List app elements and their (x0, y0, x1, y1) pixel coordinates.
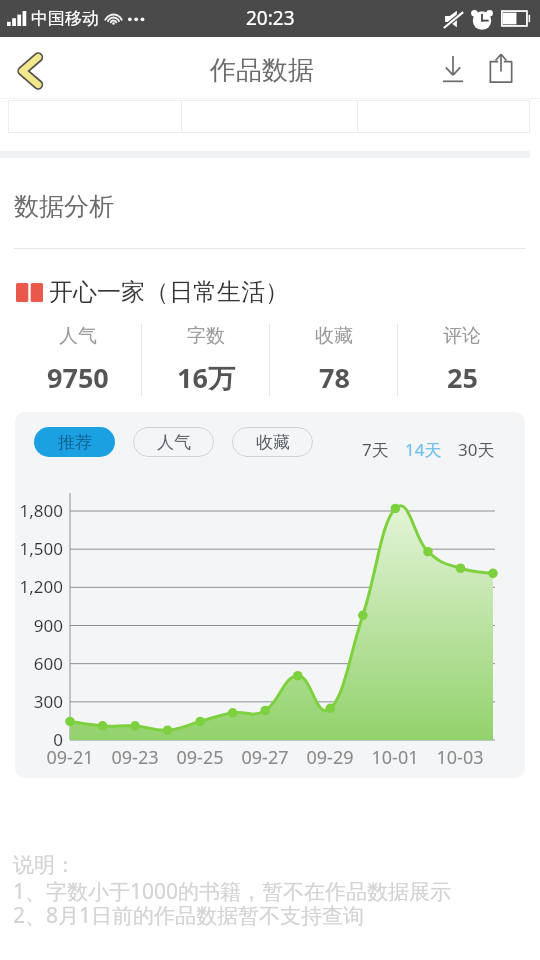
staticText: 900 (15, 614, 63, 637)
staticText: 中国移动 (31, 8, 99, 29)
staticText: 09-27 (230, 745, 300, 770)
staticText: 600 (15, 652, 63, 675)
button[interactable]: Share (477, 44, 525, 92)
button[interactable]: Back (6, 44, 54, 92)
button[interactable]: 字数 (142, 324, 270, 396)
staticText: 字数 (187, 324, 225, 348)
button[interactable]: 7天 (362, 438, 389, 461)
button[interactable]: Download (429, 44, 477, 92)
staticText: 09-21 (35, 745, 105, 770)
staticText: 09-23 (100, 745, 170, 770)
staticText: 10-03 (425, 745, 495, 770)
button[interactable]: 人气 (14, 324, 142, 396)
staticText: 评论 (443, 324, 481, 348)
staticText: 25 (447, 359, 478, 396)
staticText: 作品数据 (210, 54, 314, 87)
button[interactable]: 人气 (133, 427, 214, 457)
staticText: 1,200 (15, 575, 63, 598)
staticText: 人气 (59, 324, 97, 348)
staticText: 78 (319, 359, 350, 396)
staticText: 开心一家（日常生活） (49, 277, 289, 307)
staticText: 数据分析 (14, 191, 114, 222)
staticText: 1,800 (15, 499, 63, 522)
button[interactable]: 收藏 (232, 427, 313, 457)
staticText: 收藏 (315, 324, 353, 348)
button[interactable]: 推荐 (34, 427, 115, 457)
staticText: 10-01 (360, 745, 430, 770)
staticText: 1,500 (15, 537, 63, 560)
button[interactable]: 评论 (398, 324, 526, 396)
staticText: 09-25 (165, 745, 235, 770)
staticText: 09-29 (295, 745, 365, 770)
staticText: 推荐 (58, 432, 92, 453)
staticText: 16万 (177, 359, 235, 396)
staticText: 说明： (13, 852, 76, 878)
button[interactable]: 14天 (405, 438, 442, 461)
staticText: 人气 (157, 432, 191, 453)
staticText: 0 (15, 728, 63, 751)
staticText: 2、8月1日前的作品数据暂不支持查询 (13, 901, 365, 930)
staticText: 9750 (47, 359, 109, 396)
staticText: 20:23 (246, 5, 295, 31)
staticText: 收藏 (256, 432, 290, 453)
staticText: 300 (15, 690, 63, 713)
staticText: 1、字数小于1000的书籍，暂不在作品数据展示 (13, 877, 452, 906)
button[interactable]: 30天 (458, 438, 495, 461)
button[interactable]: 收藏 (270, 324, 398, 396)
